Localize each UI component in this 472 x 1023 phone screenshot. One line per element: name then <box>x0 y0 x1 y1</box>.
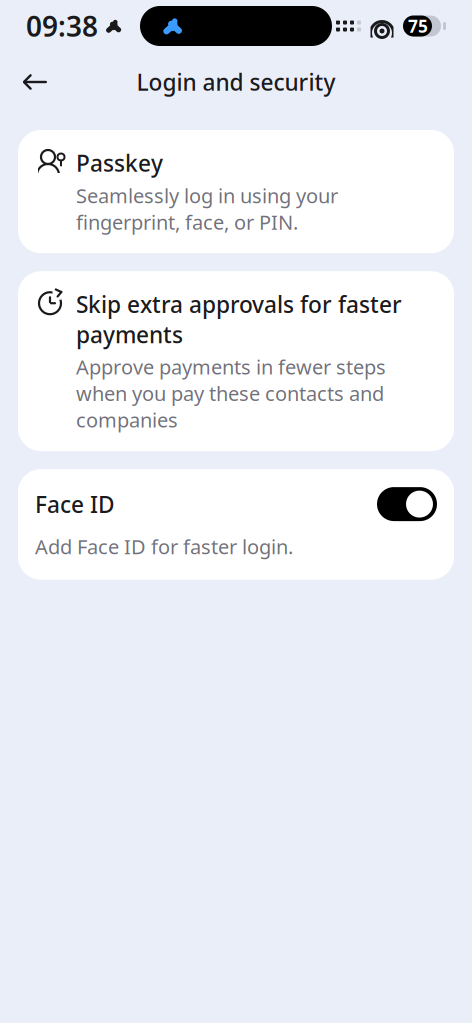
staticText: Seamlessly log in using your fingerprint… <box>76 182 338 235</box>
button[interactable]: Skip extra approvals for faster payments <box>18 271 454 451</box>
staticText: Approve payments in fewer steps when you… <box>76 353 386 433</box>
button[interactable]: Back <box>13 60 57 104</box>
staticText: 09:38 <box>26 7 98 45</box>
staticText: Skip extra approvals for faster payments <box>76 289 402 349</box>
staticText: Add Face ID for faster login. <box>35 533 293 560</box>
staticText: 75 <box>408 14 428 37</box>
staticText: Login and security <box>136 67 335 97</box>
button[interactable]: Face ID toggle, on <box>377 487 437 521</box>
staticText: Passkey <box>76 148 163 178</box>
staticText: Face ID <box>35 489 115 519</box>
button[interactable]: Passkey <box>18 130 454 253</box>
